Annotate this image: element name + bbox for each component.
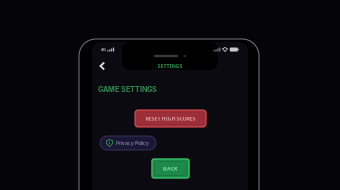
button[interactable]: BACK — [152, 159, 189, 178]
staticText: GAME SETTINGS — [98, 85, 157, 94]
staticText: 4G — [101, 47, 106, 52]
staticText: Privacy Policy — [116, 139, 149, 147]
staticText: RESET HIGH SCORES — [145, 115, 195, 122]
staticText: BACK — [163, 165, 178, 172]
button[interactable]: Privacy Policy — [100, 136, 156, 150]
button[interactable]: RESET HIGH SCORES — [135, 110, 206, 127]
staticText: SETTINGS — [157, 62, 182, 70]
button[interactable]: Back — [96, 60, 109, 72]
